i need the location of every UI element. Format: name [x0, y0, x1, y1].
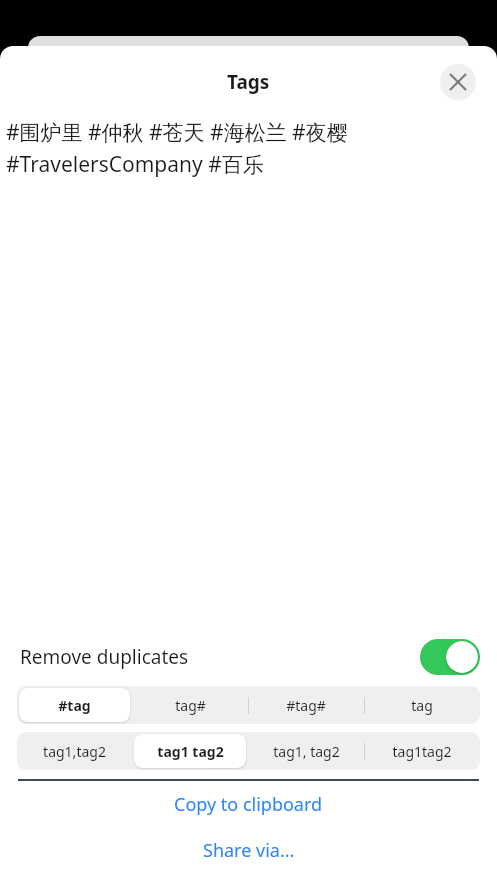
button[interactable]: Share via... — [0, 827, 497, 873]
staticText: Copy to clipboard — [174, 792, 323, 817]
staticText: tag1, tag2 — [273, 742, 340, 761]
button[interactable]: #tag — [17, 686, 132, 724]
button[interactable]: tag1 tag2 — [132, 732, 248, 770]
staticText: tag1 tag2 — [157, 742, 224, 761]
button[interactable]: tag1, tag2 — [248, 732, 364, 770]
button[interactable]: Close — [440, 64, 476, 100]
button[interactable]: tag1tag2 — [364, 732, 480, 770]
staticText: Share via... — [203, 838, 295, 863]
button[interactable]: tag1,tag2 — [17, 732, 132, 770]
staticText: tag1tag2 — [392, 742, 452, 761]
button[interactable]: Remove duplicates toggle — [420, 639, 480, 675]
button[interactable]: tag — [364, 686, 480, 724]
staticText: Remove duplicates — [20, 644, 189, 670]
button[interactable]: Copy to clipboard — [0, 781, 497, 827]
staticText: #tag — [58, 696, 91, 715]
button[interactable]: #tag# — [248, 686, 364, 724]
button[interactable]: tag# — [132, 686, 248, 724]
staticText: #tag# — [286, 696, 326, 715]
staticText: #围炉里 #仲秋 #苍天 #海松兰 #夜樱 #TravelersCompany … — [6, 118, 487, 178]
staticText: tag — [411, 696, 433, 715]
staticText: tag1,tag2 — [43, 742, 106, 761]
staticText: Tags — [227, 69, 270, 95]
staticText: tag# — [175, 696, 206, 715]
